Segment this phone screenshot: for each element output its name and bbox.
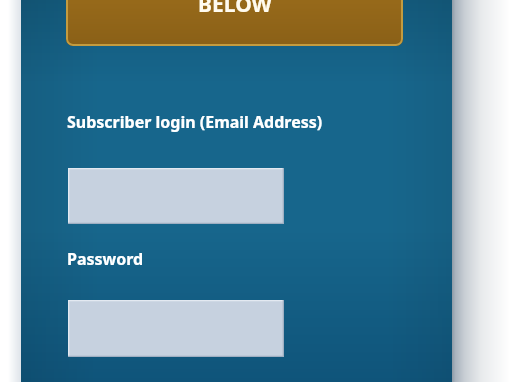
button[interactable]: BELOW — [66, 0, 403, 46]
staticText: BELOW — [198, 0, 272, 12]
button[interactable]: Email address input — [68, 168, 284, 224]
button[interactable]: Password input — [68, 300, 284, 357]
staticText: Password — [67, 248, 144, 270]
staticText: Subscriber login (Email Address) — [67, 111, 323, 133]
